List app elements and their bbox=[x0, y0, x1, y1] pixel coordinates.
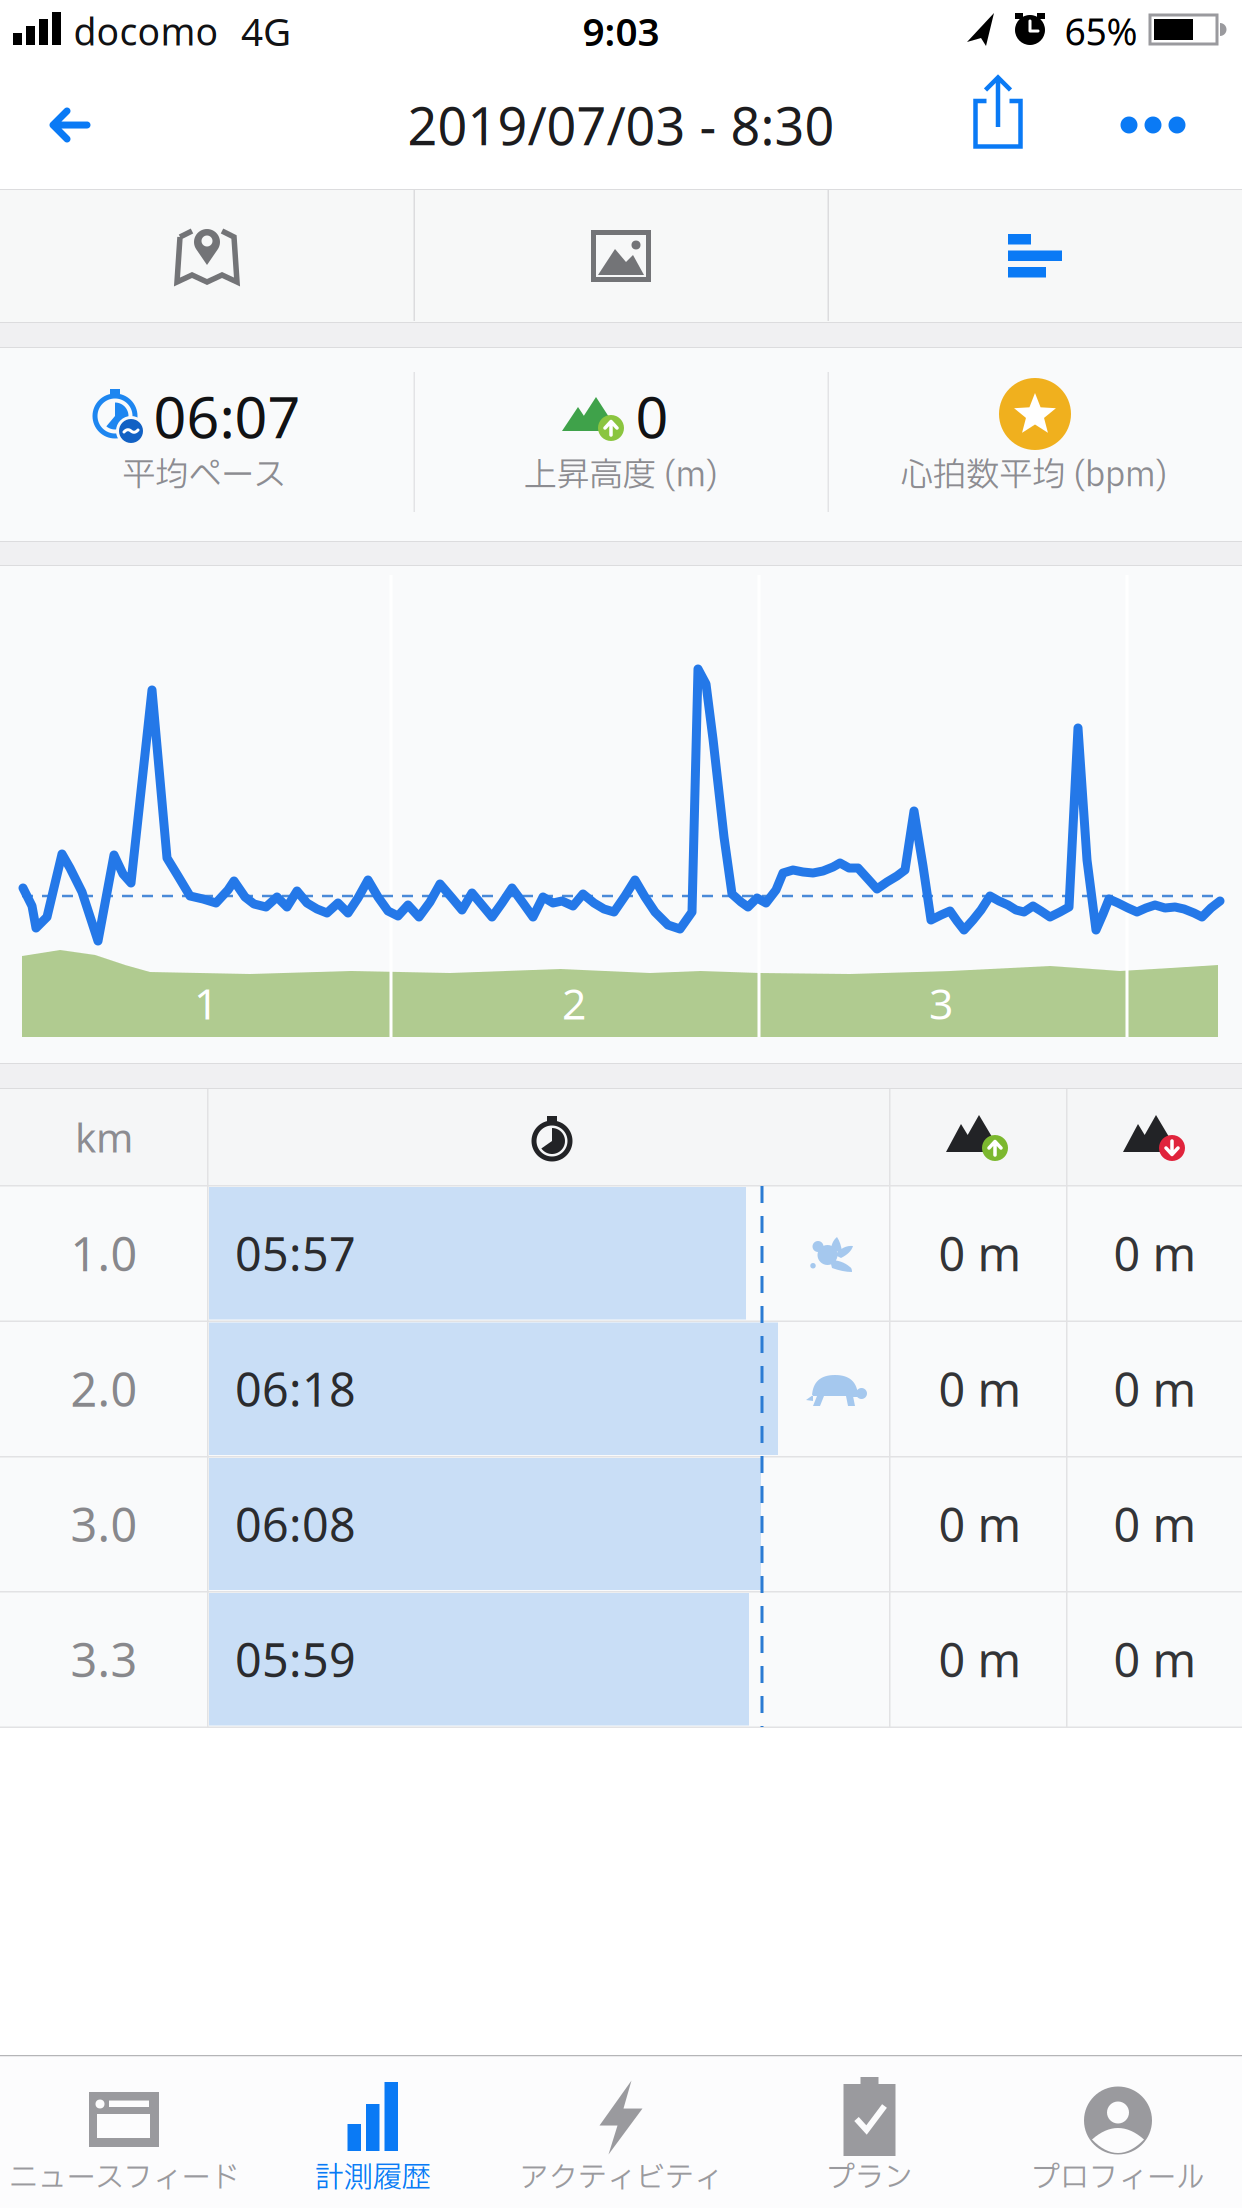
staticText: 05:59 bbox=[235, 1628, 356, 1690]
button[interactable]: Profile bbox=[994, 2055, 1242, 2207]
button[interactable]: Plan bbox=[745, 2055, 993, 2207]
staticText: アクティビティ bbox=[519, 2156, 722, 2200]
staticText: 06:08 bbox=[235, 1493, 356, 1555]
staticText: 9:03 bbox=[582, 5, 659, 57]
staticText: 0 m bbox=[938, 1493, 1021, 1555]
staticText: 心拍数平均 (bpm) bbox=[900, 451, 1168, 501]
staticText: 0 bbox=[635, 378, 668, 454]
staticText: 上昇高度 (m) bbox=[523, 451, 718, 501]
staticText: 0 m bbox=[938, 1628, 1021, 1690]
button[interactable]: Back bbox=[31, 87, 107, 163]
staticText: 1.0 bbox=[70, 1222, 137, 1284]
staticText: 1 bbox=[194, 975, 218, 1031]
button[interactable]: History bbox=[248, 2055, 496, 2207]
staticText: 0 m bbox=[938, 1222, 1021, 1284]
staticText: 0 m bbox=[938, 1358, 1021, 1420]
button[interactable]: Splits bbox=[830, 190, 1240, 321]
button[interactable]: Share bbox=[960, 67, 1036, 157]
staticText: docomo bbox=[73, 6, 218, 56]
staticText: ニュースフィード bbox=[8, 2156, 239, 2200]
staticText: 3.0 bbox=[70, 1493, 137, 1555]
button[interactable]: News Feed bbox=[0, 2055, 248, 2207]
staticText: プラン bbox=[826, 2156, 913, 2200]
button[interactable]: More bbox=[1108, 90, 1198, 160]
staticText: 2019/07/03 - 8:30 bbox=[407, 90, 834, 160]
staticText: 4G bbox=[241, 5, 291, 57]
staticText: 計測履歴 bbox=[314, 2156, 430, 2200]
staticText: 65% bbox=[1064, 6, 1137, 56]
staticText: 平均ペース bbox=[122, 451, 286, 501]
staticText: km bbox=[75, 1110, 133, 1163]
staticText: 0 m bbox=[1113, 1222, 1196, 1284]
staticText: 0 m bbox=[1113, 1358, 1196, 1420]
staticText: 2.0 bbox=[70, 1358, 137, 1420]
staticText: 3 bbox=[929, 975, 953, 1031]
staticText: 05:57 bbox=[235, 1222, 356, 1284]
staticText: 06:07 bbox=[153, 378, 300, 454]
staticText: 06:18 bbox=[235, 1358, 356, 1420]
button[interactable]: Photos bbox=[416, 190, 826, 321]
staticText: 2 bbox=[562, 975, 586, 1031]
button[interactable]: Map bbox=[2, 190, 412, 321]
staticText: 0 m bbox=[1113, 1628, 1196, 1690]
staticText: 0 m bbox=[1113, 1493, 1196, 1555]
button[interactable]: Activity bbox=[497, 2055, 745, 2207]
staticText: プロフィール bbox=[1031, 2156, 1205, 2200]
staticText: 3.3 bbox=[70, 1628, 137, 1690]
